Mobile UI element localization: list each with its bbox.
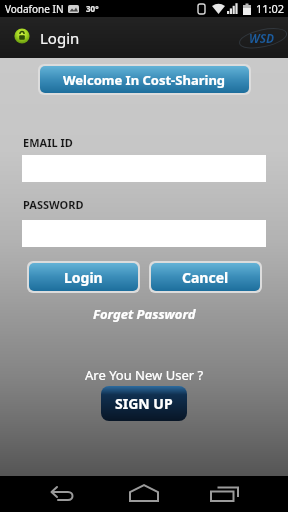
button[interactable]: Forget Password	[93, 305, 196, 323]
staticText: WSD	[249, 30, 275, 46]
button[interactable]	[192, 476, 288, 512]
staticText: Login	[64, 268, 103, 287]
staticText: Vodafone IN	[5, 2, 64, 16]
staticText: Welcome In Cost-Sharing	[63, 71, 226, 89]
button[interactable]: WSD	[241, 23, 283, 53]
button[interactable]	[0, 476, 96, 512]
button[interactable]: SIGN UP	[101, 386, 187, 421]
button[interactable]: Welcome In Cost-Sharing	[40, 66, 249, 93]
staticText: Forget Password	[93, 305, 196, 323]
staticText: 30°	[86, 3, 99, 14]
button[interactable]	[96, 476, 192, 512]
button[interactable]: Cancel	[151, 263, 260, 291]
staticText: EMAIL ID	[23, 135, 288, 150]
staticText: Are You New User ?	[85, 366, 204, 384]
staticText: Login	[40, 28, 80, 48]
staticText: 11:02	[256, 1, 285, 16]
staticText: Cancel	[182, 268, 229, 287]
staticText: SIGN UP	[115, 394, 173, 413]
staticText: PASSWORD	[23, 197, 288, 212]
button[interactable]: Login	[29, 263, 138, 291]
